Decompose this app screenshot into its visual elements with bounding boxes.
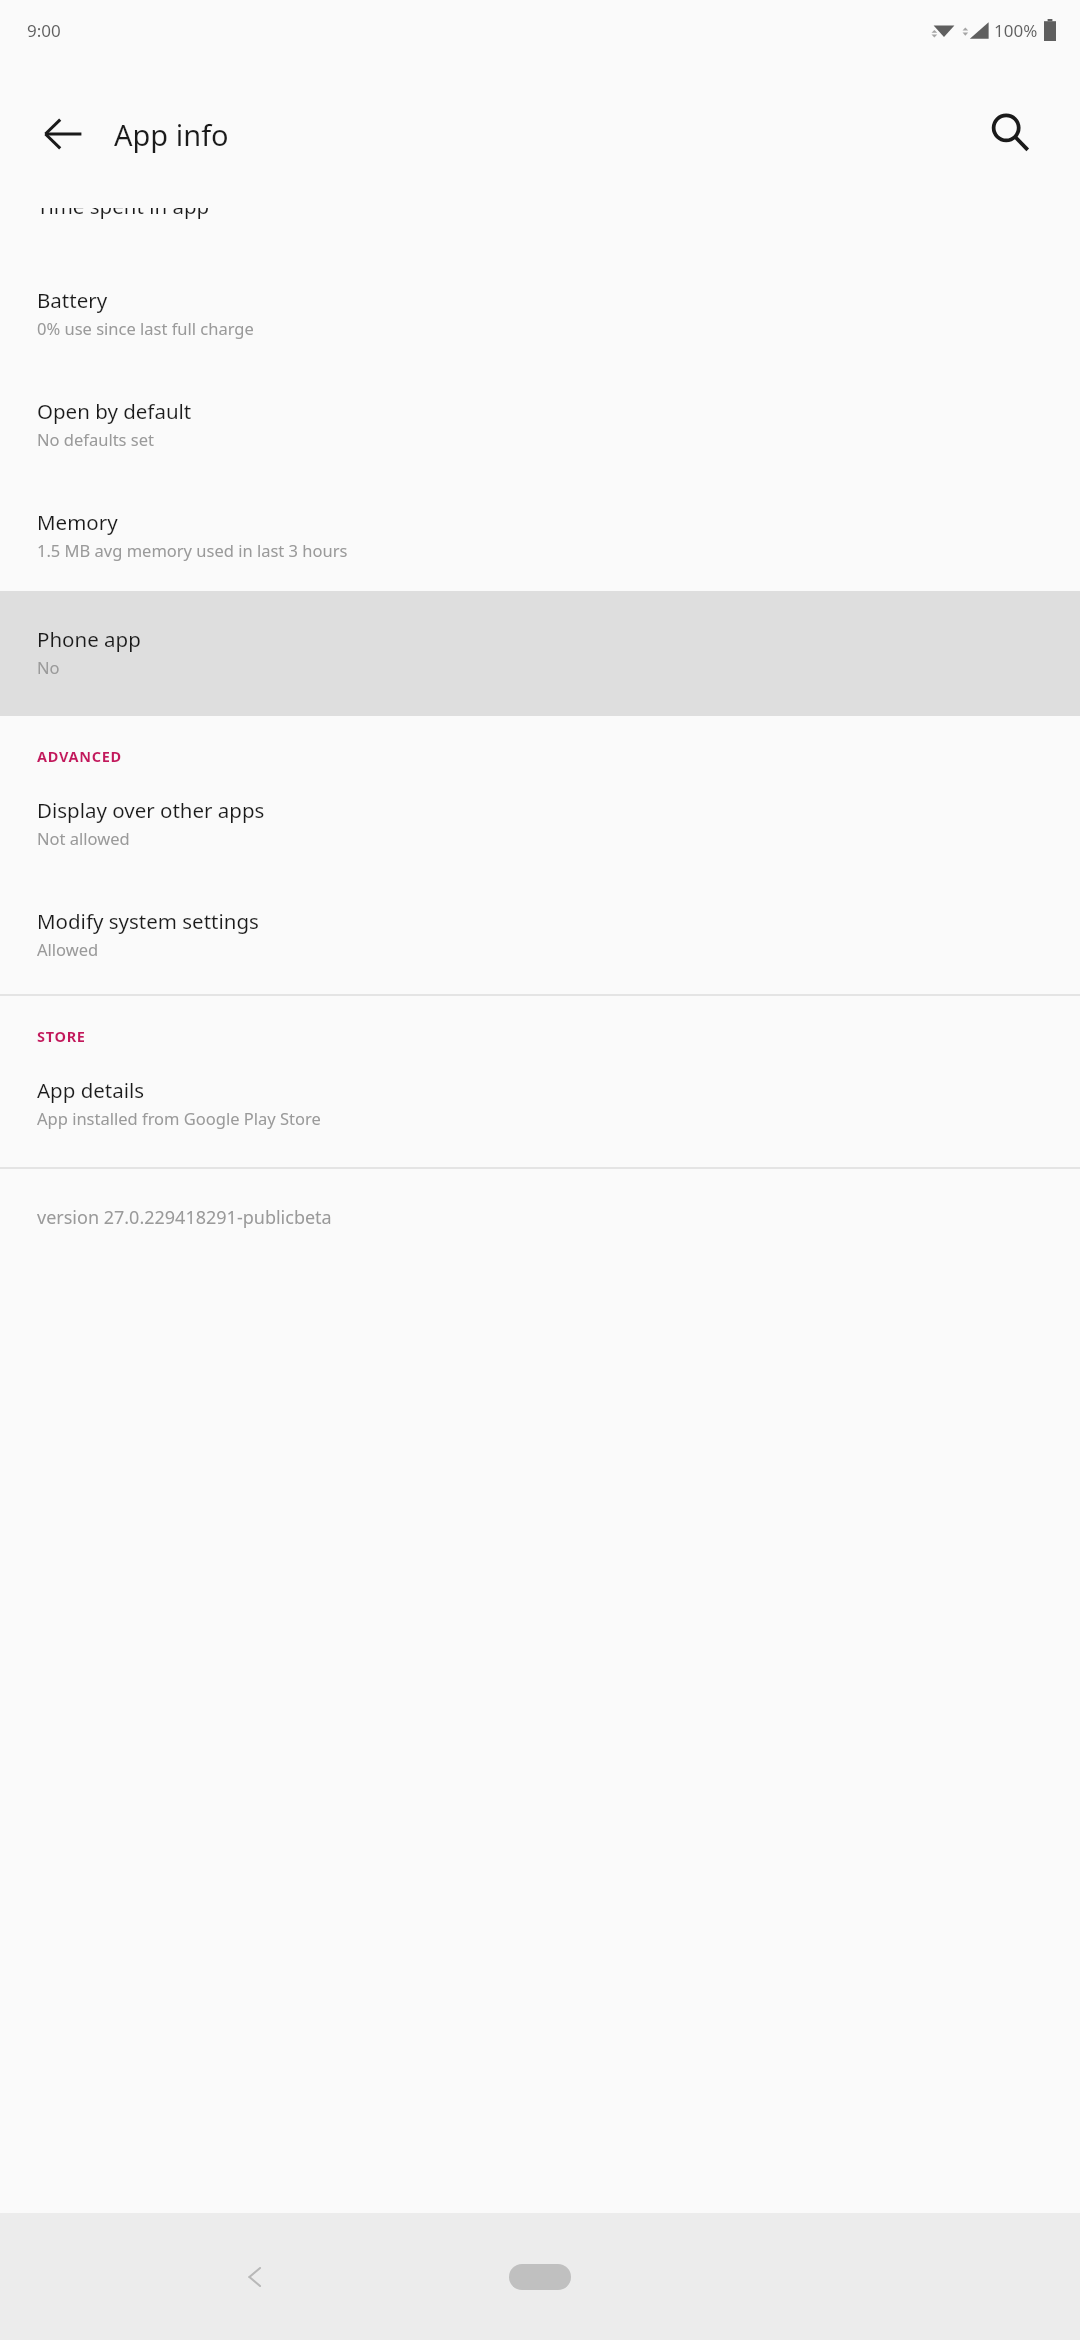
staticText: STORE xyxy=(37,1026,86,1046)
staticText: Memory xyxy=(37,508,118,536)
staticText: App info xyxy=(114,115,229,154)
button[interactable]: Modify system settings xyxy=(0,877,1080,994)
staticText: Display over other apps xyxy=(37,796,265,824)
staticText: Not allowed xyxy=(37,827,130,849)
button[interactable]: Search xyxy=(972,95,1050,173)
staticText: App details xyxy=(37,1076,145,1104)
staticText: 9:00 xyxy=(27,19,61,42)
button[interactable]: Home xyxy=(480,2247,600,2307)
staticText: Modify system settings xyxy=(37,907,259,935)
button[interactable]: Phone app xyxy=(0,591,1080,716)
staticText: Allowed xyxy=(37,938,99,960)
staticText: version 27.0.229418291-publicbeta xyxy=(37,1205,332,1230)
staticText: 1.5 MB avg memory used in last 3 hours xyxy=(37,539,348,561)
staticText: Phone app xyxy=(37,625,141,653)
button[interactable]: Open by default xyxy=(0,367,1080,478)
staticText: ADVANCED xyxy=(37,746,122,766)
button[interactable]: Memory xyxy=(0,478,1080,591)
staticText: App installed from Google Play Store xyxy=(37,1107,321,1129)
staticText: No xyxy=(37,656,60,678)
staticText: 100% xyxy=(994,19,1038,42)
staticText: Open by default xyxy=(37,397,192,425)
button[interactable]: Back xyxy=(210,2232,300,2322)
button[interactable]: App details xyxy=(0,1060,1080,1167)
button[interactable]: Back xyxy=(26,97,100,171)
staticText: Time spent in app xyxy=(37,208,210,220)
button[interactable]: Time spent in app xyxy=(0,208,1080,252)
button[interactable]: Battery xyxy=(0,252,1080,367)
staticText: No defaults set xyxy=(37,428,154,450)
button[interactable]: Display over other apps xyxy=(0,780,1080,877)
staticText: 0% use since last full charge xyxy=(37,317,254,339)
staticText: Battery xyxy=(37,286,108,314)
